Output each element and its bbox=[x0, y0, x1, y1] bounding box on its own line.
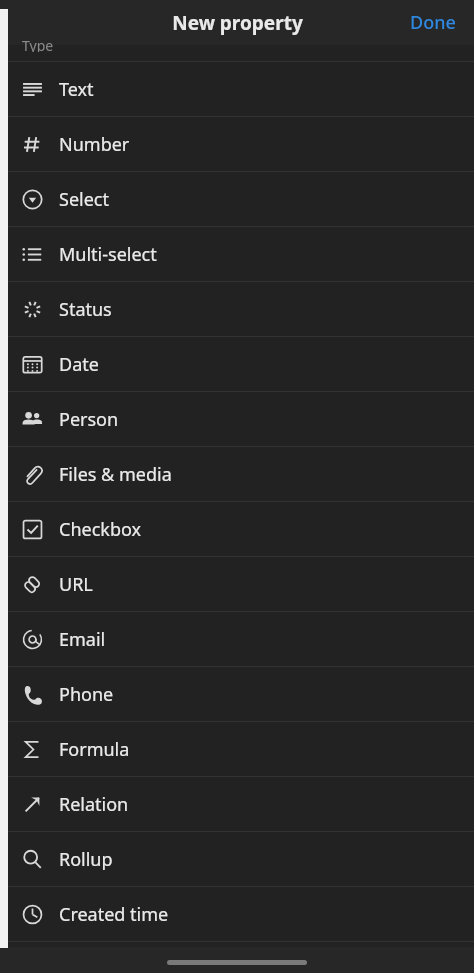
staticText: Multi-select bbox=[59, 242, 157, 267]
button[interactable]: Formula bbox=[0, 722, 474, 776]
staticText: Created time bbox=[59, 902, 169, 927]
staticText: Text bbox=[59, 77, 94, 102]
staticText: Files & media bbox=[59, 462, 172, 487]
staticText: Formula bbox=[59, 737, 130, 762]
staticText: Email bbox=[59, 627, 106, 652]
staticText: URL bbox=[59, 572, 93, 597]
staticText: Checkbox bbox=[59, 517, 142, 542]
button[interactable]: Created time bbox=[0, 887, 474, 941]
button[interactable]: Person bbox=[0, 392, 474, 446]
button[interactable]: Done bbox=[392, 0, 474, 45]
staticText: Done bbox=[410, 10, 456, 35]
button[interactable]: Status bbox=[0, 282, 474, 336]
staticText: Status bbox=[59, 297, 112, 322]
staticText: Date bbox=[59, 352, 99, 377]
button[interactable]: Multi-select bbox=[0, 227, 474, 281]
button[interactable]: Number bbox=[0, 117, 474, 171]
staticText: Phone bbox=[59, 682, 114, 707]
staticText: Type bbox=[22, 36, 54, 52]
staticText: Relation bbox=[59, 792, 129, 817]
staticText: New property bbox=[172, 10, 303, 36]
button[interactable]: Select bbox=[0, 172, 474, 226]
button[interactable]: Text bbox=[0, 62, 474, 116]
button[interactable]: Rollup bbox=[0, 832, 474, 886]
button[interactable]: Checkbox bbox=[0, 502, 474, 556]
button[interactable]: URL bbox=[0, 557, 474, 611]
button[interactable]: Date bbox=[0, 337, 474, 391]
button[interactable]: Files & media bbox=[0, 447, 474, 501]
button[interactable]: Phone bbox=[0, 667, 474, 721]
button[interactable]: Relation bbox=[0, 777, 474, 831]
staticText: Rollup bbox=[59, 847, 113, 872]
staticText: Select bbox=[59, 187, 109, 212]
button[interactable]: Email bbox=[0, 612, 474, 666]
staticText: Number bbox=[59, 132, 130, 157]
staticText: Person bbox=[59, 407, 119, 432]
